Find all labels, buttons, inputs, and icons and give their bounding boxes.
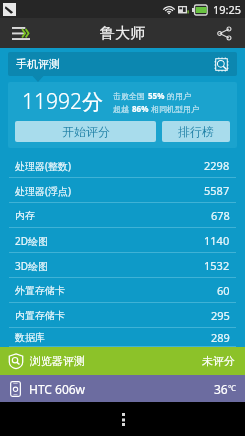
staticText: 排行榜: [178, 124, 214, 139]
staticText: 击败全国: [113, 90, 148, 101]
staticText: 的用户: [165, 90, 192, 101]
staticText: 5587: [204, 183, 230, 198]
staticText: 浏览器评测: [30, 354, 85, 368]
button[interactable]: 处理器(整数): [0, 153, 245, 178]
button[interactable]: 内存: [0, 203, 245, 228]
staticText: 内置存储卡: [15, 309, 65, 322]
staticText: 1532: [204, 258, 230, 273]
staticText: 11992分: [22, 87, 103, 116]
button[interactable]: More options: [108, 404, 138, 434]
staticText: 289: [211, 330, 230, 345]
button[interactable]: Detect hardware: [211, 54, 231, 74]
staticText: 1140: [204, 233, 230, 248]
button[interactable]: 数据库: [0, 328, 245, 347]
staticText: 36: [214, 381, 228, 397]
staticText: HTC 606w: [29, 381, 86, 397]
staticText: 处理器(浮点): [15, 184, 71, 198]
button[interactable]: Share: [211, 20, 237, 46]
button[interactable]: 2D绘图: [0, 228, 245, 253]
button[interactable]: 浏览器评测: [0, 347, 245, 375]
button[interactable]: Menu: [8, 20, 34, 46]
staticText: 2298: [204, 158, 230, 173]
button[interactable]: 开始评分: [15, 121, 156, 142]
staticText: 超越: [113, 103, 132, 114]
staticText: 678: [211, 208, 230, 223]
staticText: 开始评分: [62, 124, 110, 139]
staticText: 外置存储卡: [15, 284, 65, 297]
staticText: 55%: [148, 90, 165, 101]
button[interactable]: 外置存储卡: [0, 278, 245, 303]
staticText: 2D绘图: [15, 234, 49, 248]
button[interactable]: 内置存储卡: [0, 303, 245, 328]
staticText: 86%: [132, 103, 149, 114]
staticText: 手机评测: [16, 57, 60, 71]
button[interactable]: 排行榜: [162, 121, 230, 142]
button[interactable]: 3D绘图: [0, 253, 245, 278]
staticText: 未评分: [202, 354, 235, 368]
staticText: 3D绘图: [15, 259, 49, 273]
staticText: 60: [217, 283, 230, 298]
button[interactable]: 处理器(浮点): [0, 178, 245, 203]
staticText: 数据库: [15, 331, 45, 344]
staticText: 处理器(整数): [15, 159, 71, 173]
staticText: 19:25: [213, 2, 242, 17]
staticText: 内存: [15, 209, 35, 222]
staticText: 鲁大师: [100, 24, 145, 43]
staticText: 295: [211, 308, 230, 323]
staticText: ℃: [228, 382, 236, 393]
button[interactable]: 手机评测: [8, 52, 237, 76]
staticText: 相同机型用户: [149, 103, 200, 114]
button[interactable]: HTC 606w: [0, 375, 245, 402]
